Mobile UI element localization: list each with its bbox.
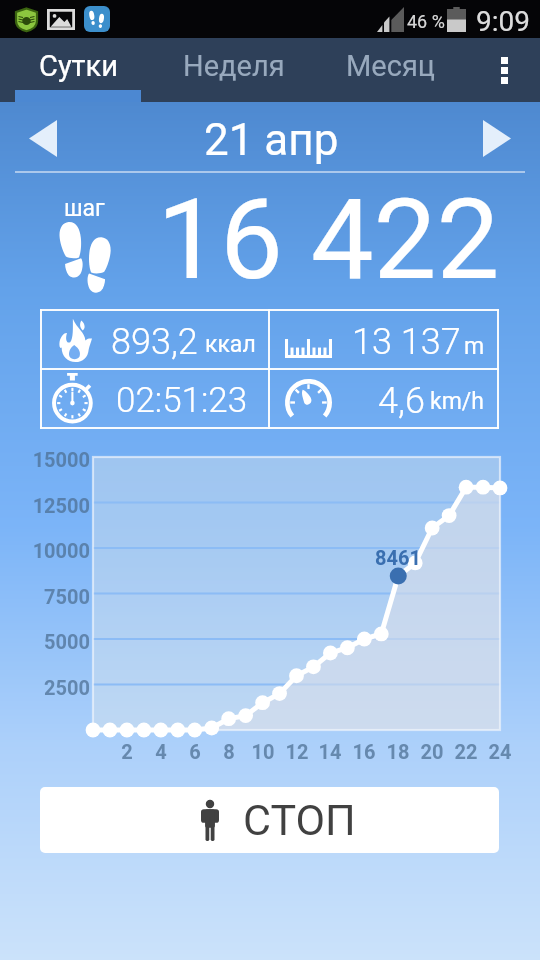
staticText: шаг <box>64 195 105 222</box>
staticText: 7500 <box>0 585 90 608</box>
staticText: 46 % <box>407 11 445 32</box>
staticText: 4 <box>141 740 181 763</box>
button[interactable]: Неделя <box>156 38 312 102</box>
staticText: 8 <box>209 740 249 763</box>
button[interactable]: Месяц <box>312 38 468 102</box>
button[interactable]: СТОП <box>40 787 499 853</box>
staticText: 10000 <box>0 539 90 562</box>
staticText: 893,2 <box>111 321 198 363</box>
staticText: 4,6 <box>378 380 425 422</box>
staticText: 15000 <box>0 448 90 471</box>
staticText: m <box>464 333 485 360</box>
staticText: 13 137 <box>352 321 461 363</box>
staticText: 02:51:23 <box>116 380 248 421</box>
staticText: 2500 <box>0 676 90 699</box>
button[interactable]: Previous day <box>0 102 100 174</box>
staticText: 8461 <box>375 546 421 569</box>
staticText: 14 <box>310 740 350 763</box>
staticText: ккал <box>205 331 256 358</box>
staticText: 20 <box>412 740 452 763</box>
button[interactable]: More options <box>468 38 540 102</box>
staticText: 12500 <box>0 494 90 517</box>
staticText: СТОП <box>243 795 356 845</box>
staticText: 6 <box>175 740 215 763</box>
staticText: 22 <box>446 740 486 763</box>
button[interactable]: Сутки <box>15 38 141 102</box>
staticText: Месяц <box>346 49 435 83</box>
staticText: 18 <box>378 740 418 763</box>
staticText: 10 <box>243 740 283 763</box>
staticText: 5000 <box>0 630 90 653</box>
staticText: 2 <box>107 740 147 763</box>
staticText: 16 422 <box>157 174 500 305</box>
staticText: km/h <box>430 388 484 415</box>
staticText: 21 апр <box>204 114 339 166</box>
staticText: Сутки <box>39 49 118 83</box>
button[interactable]: Next day <box>440 102 540 174</box>
staticText: 24 <box>480 740 520 763</box>
staticText: 12 <box>277 740 317 763</box>
staticText: 9:09 <box>476 5 530 38</box>
staticText: Неделя <box>183 49 285 83</box>
staticText: 16 <box>344 740 384 763</box>
